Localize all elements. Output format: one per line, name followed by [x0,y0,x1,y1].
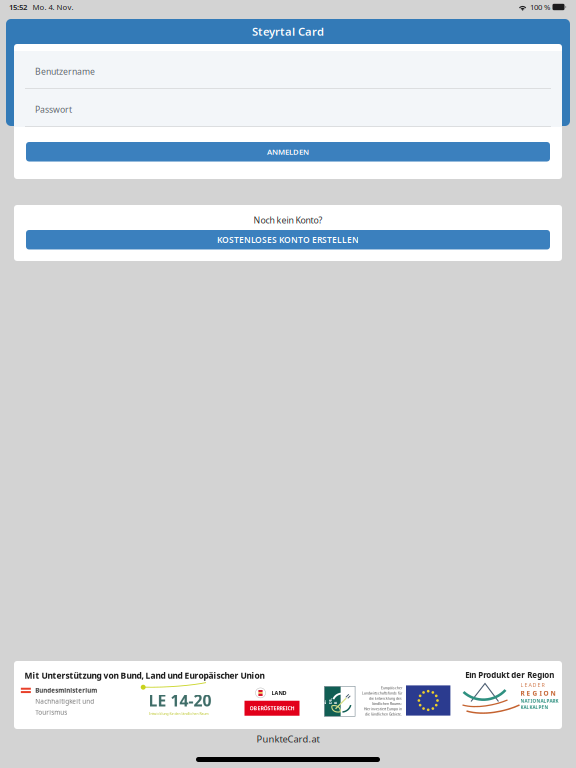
staticText: KOSTENLOSES KONTO ERSTELLEN [217,234,359,245]
button[interactable]: KOSTENLOSES KONTO ERSTELLEN [26,230,550,249]
staticText: 15:52 [9,2,27,12]
staticText: Steyrtal Card [252,24,324,39]
staticText: Tourismus [35,708,67,717]
staticText: Europäischer [381,686,402,690]
staticText: Mit Unterstützung von Bund, Land und Eur… [24,670,264,681]
staticText: Landwirtschaftsfonds für [362,691,402,695]
staticText: PunkteCard.at [256,733,319,745]
staticText: LAND [271,689,286,697]
staticText: ANMELDEN [267,146,309,157]
staticText: die Entwicklung des [369,696,402,701]
staticText: KALKALPEN [520,704,548,711]
staticText: Ein Produkt der Region [465,670,554,680]
staticText: LEADER [324,690,330,712]
button[interactable]: ANMELDEN [26,142,550,161]
staticText: Passwort [35,104,72,115]
staticText: NATIONALPARK [520,698,558,704]
staticText: Hier investiert Europa in [364,707,402,711]
staticText: Entwicklung für den ländlichen Raum [148,711,208,716]
staticText: OBERÖSTERREICH [249,705,294,712]
staticText: die ländlichen Gebiete. [365,712,402,716]
staticText: L E A D E R [520,681,544,689]
staticText: ländlichen Raums: [372,701,402,706]
staticText: Mo. 4. Nov. [32,2,73,12]
staticText: Benutzername [35,66,95,77]
staticText: Bundesministerium [35,686,97,695]
staticText: R E G I O N [520,689,555,698]
staticText: 100 % [530,2,550,12]
staticText: Noch kein Konto? [253,214,322,226]
staticText: LE 14-20 [148,690,211,711]
staticText: Nachhaltigkeit und [35,697,94,706]
